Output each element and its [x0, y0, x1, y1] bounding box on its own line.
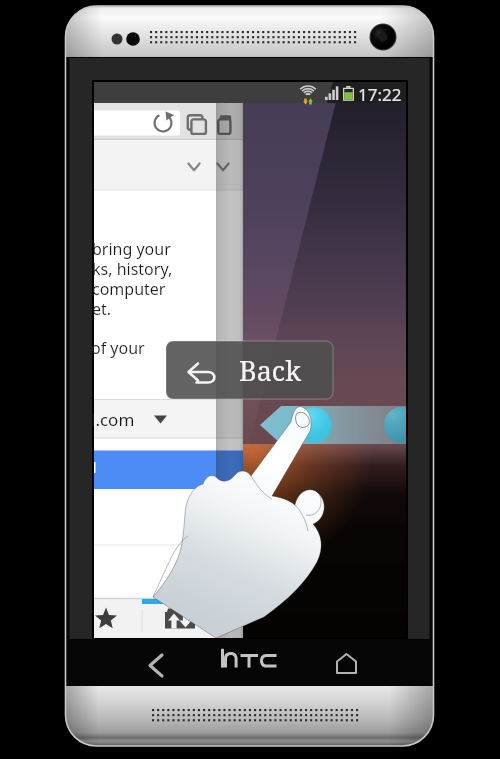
button[interactable]: Home	[318, 645, 378, 685]
button[interactable]: Back	[166, 341, 333, 399]
button[interactable]: Reload	[155, 104, 181, 136]
button[interactable]: Back	[130, 645, 190, 685]
staticText: Back	[239, 352, 301, 389]
staticText: 17:22	[358, 83, 402, 106]
staticText: of your	[91, 337, 145, 359]
staticText: bring your ks, history, computer et.	[92, 238, 173, 320]
staticText: l.com	[91, 408, 135, 430]
button[interactable]: Tabs	[182, 104, 208, 136]
button[interactable]: Bookmarks	[94, 606, 140, 638]
button[interactable]: Other devices	[141, 606, 205, 638]
